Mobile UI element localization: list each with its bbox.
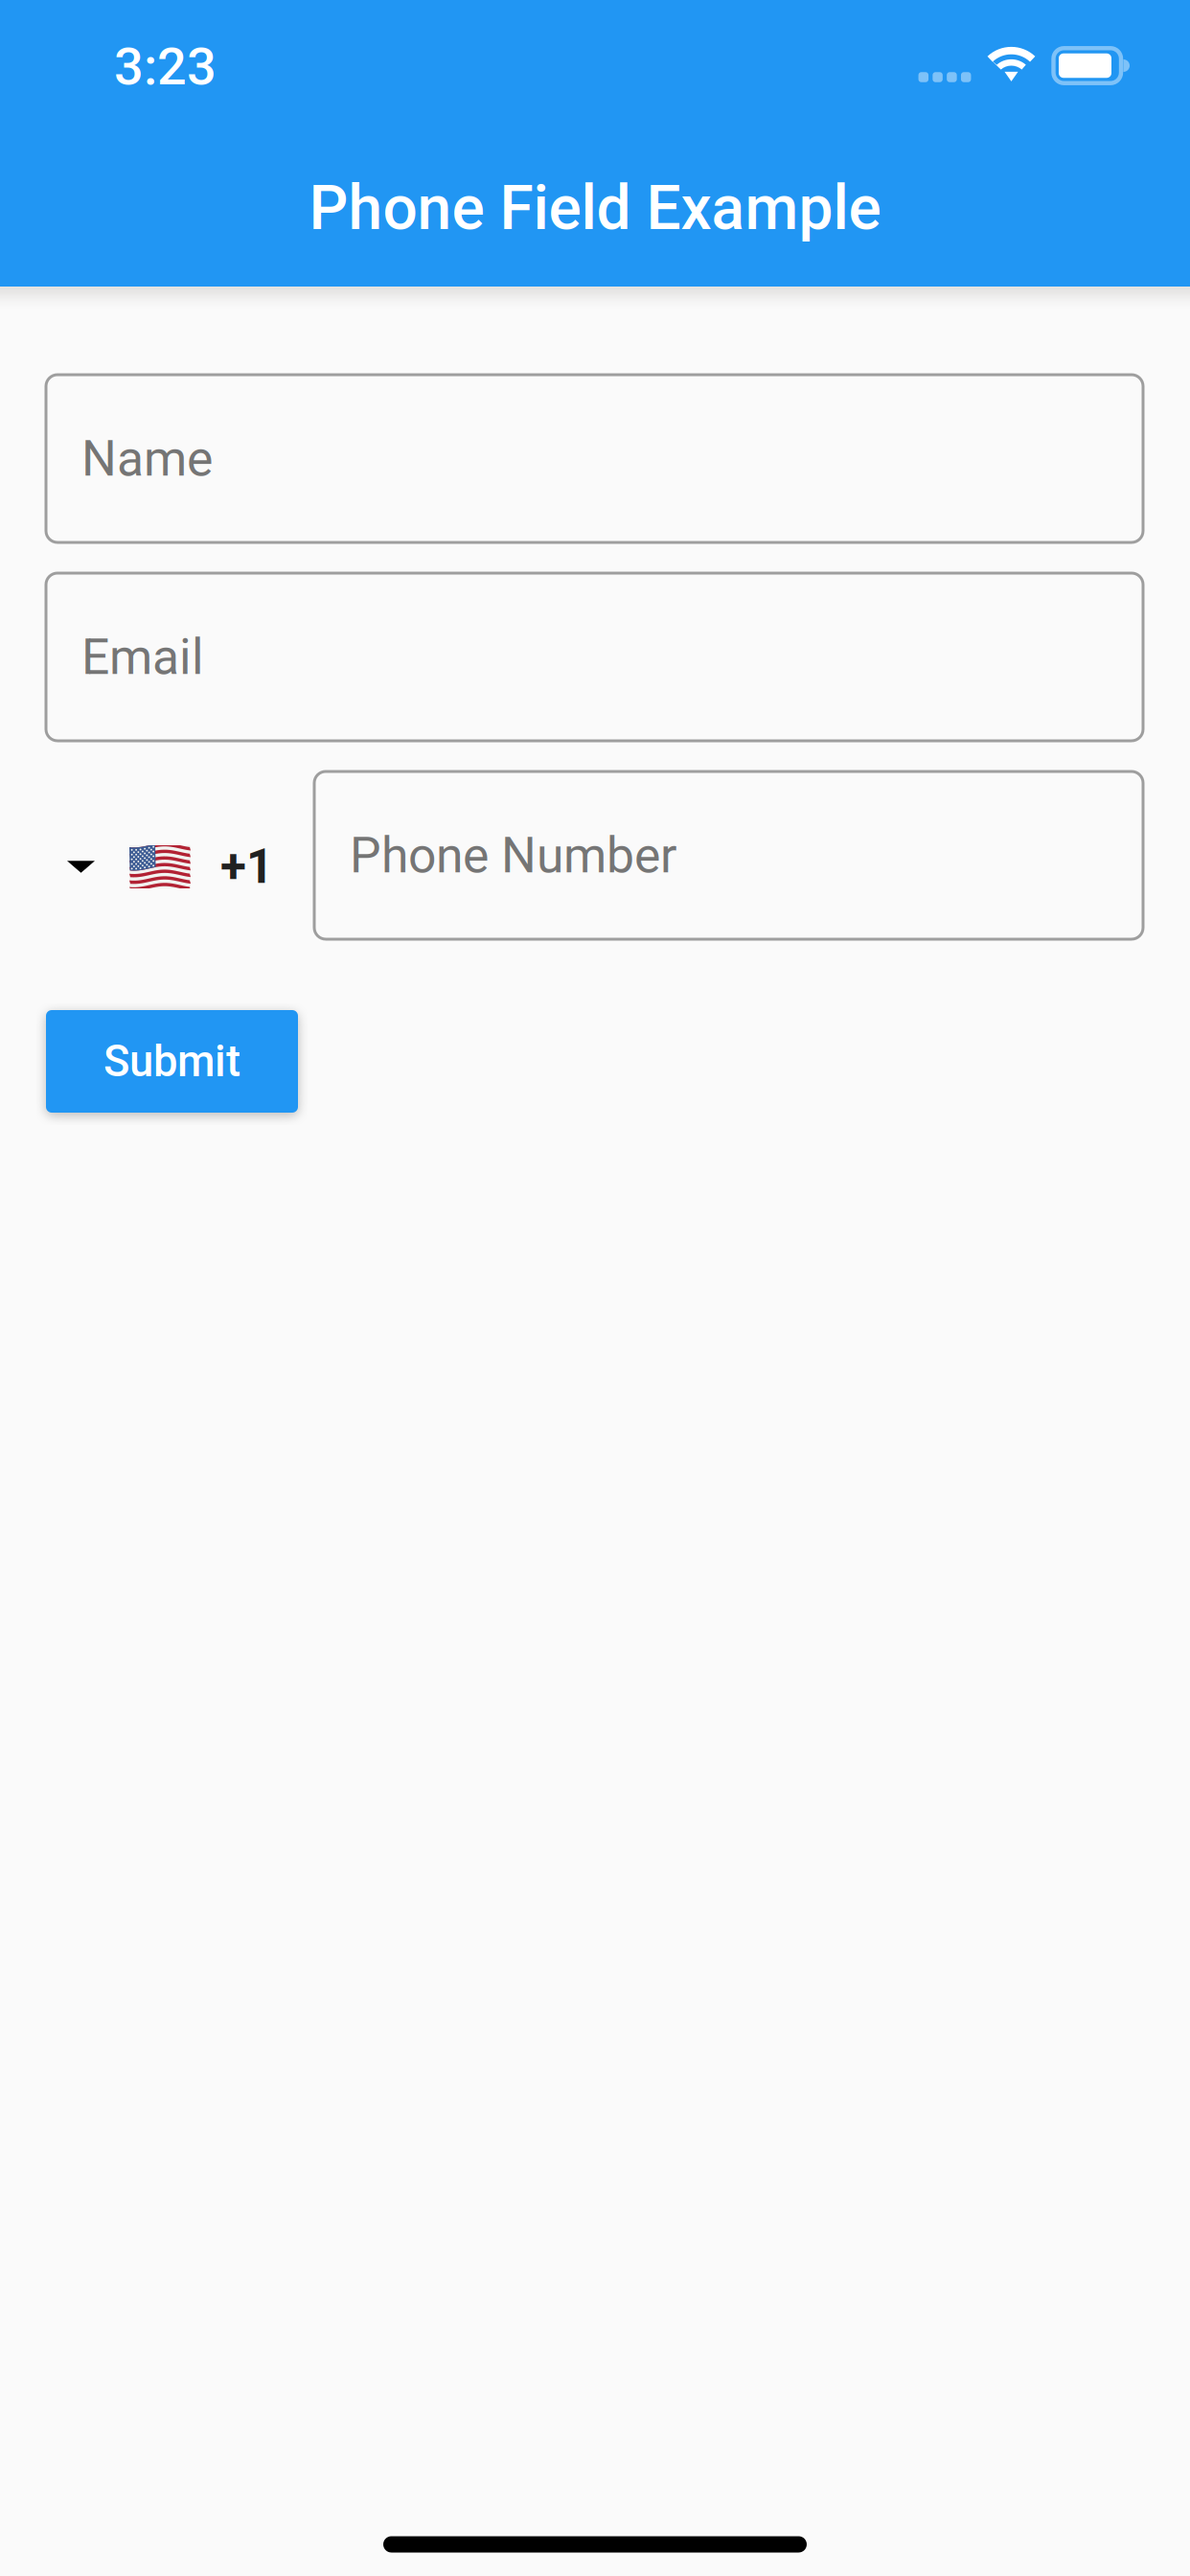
staticText: 3:23 <box>114 36 217 97</box>
staticText: Submit <box>103 1036 240 1087</box>
button[interactable]: Submit <box>46 1010 298 1113</box>
staticText: Email <box>81 628 204 686</box>
staticText: Name <box>81 430 213 488</box>
staticText: Phone Field Example <box>309 172 881 244</box>
staticText: +1 <box>220 839 273 895</box>
button[interactable]: +1 <box>46 771 314 939</box>
staticText: Phone Number <box>350 826 676 884</box>
